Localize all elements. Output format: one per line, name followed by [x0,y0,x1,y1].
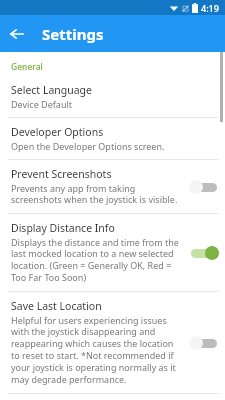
staticText: Open the Developer Options screen. [11,140,165,152]
staticText: Device Default [11,98,73,110]
staticText: Helpful for users experiencing issues wi… [11,314,183,386]
staticText: 4:19 [201,2,219,14]
staticText: Prevent Screenshots [11,167,112,181]
button[interactable]: Save Last Location [0,292,225,393]
staticText: Developer Options [11,125,104,139]
staticText: General [11,61,43,73]
staticText: Save Last Location [11,299,102,313]
staticText: Settings [42,24,104,44]
staticText: Prevents any app from taking screenshots… [11,182,183,206]
button[interactable]: Select Language [0,76,225,117]
staticText: Display Distance Info [11,221,115,235]
button[interactable]: Toggle off [189,334,219,352]
button[interactable]: Back [0,17,34,51]
staticText: Select Language [11,83,92,97]
button[interactable]: Prevent Screenshots [0,160,225,213]
button[interactable]: Display Distance Info [0,214,225,291]
button[interactable]: Developer Options [0,118,225,159]
button[interactable]: Toggle off [189,178,219,196]
button[interactable]: Toggle on [189,244,219,262]
staticText: Displays the distance and time from the … [11,236,183,284]
